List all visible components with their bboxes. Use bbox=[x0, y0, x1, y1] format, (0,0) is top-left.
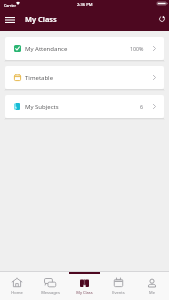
button[interactable]: My Class bbox=[67, 272, 101, 300]
staticText: Home bbox=[11, 290, 23, 295]
staticText: Carrier bbox=[4, 3, 16, 8]
button[interactable]: Refresh bbox=[154, 11, 169, 26]
button[interactable]: Menu bbox=[2, 12, 17, 27]
staticText: My Attendance bbox=[25, 45, 68, 53]
staticText: Me bbox=[149, 290, 155, 295]
staticText: 6 bbox=[140, 103, 144, 110]
staticText: 2:36 PM bbox=[77, 2, 93, 8]
staticText: My Class bbox=[76, 290, 93, 295]
button[interactable]: Me bbox=[135, 272, 169, 300]
staticText: Events bbox=[112, 290, 125, 295]
staticText: Timetable bbox=[25, 74, 54, 82]
staticText: 100% bbox=[130, 45, 144, 52]
button[interactable]: Timetable bbox=[5, 66, 164, 89]
staticText: Messages bbox=[41, 290, 60, 295]
button[interactable]: Events bbox=[101, 272, 135, 300]
button[interactable]: My Attendance bbox=[5, 37, 164, 60]
button[interactable]: My Subjects bbox=[5, 95, 164, 118]
button[interactable]: Home bbox=[0, 272, 33, 300]
staticText: My Subjects bbox=[25, 103, 59, 111]
button[interactable]: Messages bbox=[33, 272, 67, 300]
staticText: My Class bbox=[25, 14, 57, 24]
